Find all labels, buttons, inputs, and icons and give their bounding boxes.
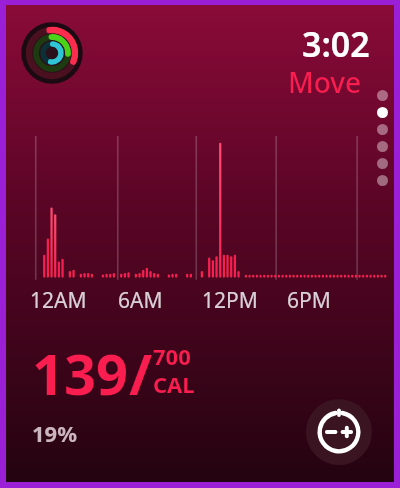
staticText: 6PM [287,286,331,314]
staticText: 12AM [30,286,87,314]
staticText: / [129,335,153,411]
staticText: 12PM [202,286,258,314]
staticText: 139 [32,335,129,411]
staticText: CAL [153,369,195,399]
staticText: 19% [32,418,78,448]
staticText: 6AM [118,286,163,314]
staticText: Move [288,63,362,101]
staticText: 3:02 [302,21,370,67]
button[interactable]: Activity rings [20,21,84,85]
button[interactable]: Change move goal [306,399,372,465]
staticText: 700 [153,341,191,371]
